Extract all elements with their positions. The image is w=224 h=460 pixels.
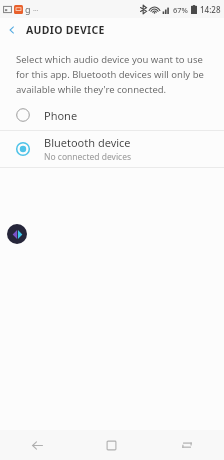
staticText: g — [25, 3, 31, 15]
button[interactable]: Assistant — [7, 224, 27, 244]
staticText: 67% — [173, 5, 188, 15]
staticText: No connected devices — [44, 151, 132, 163]
staticText: AUDIO DEVICE — [26, 23, 105, 37]
staticText: Bluetooth device — [44, 135, 131, 150]
staticText: 14:28 — [200, 4, 221, 15]
staticText: Select which audio device you want to us… — [16, 53, 208, 96]
button[interactable]: Phone — [0, 100, 224, 130]
staticText: … — [33, 4, 39, 14]
button[interactable]: Home — [74, 430, 149, 460]
button[interactable]: Bluetooth device — [0, 131, 224, 167]
staticText: Phone — [44, 108, 78, 123]
button[interactable]: Recents — [149, 430, 224, 460]
button[interactable]: Back — [0, 18, 23, 41]
button[interactable]: Back — [0, 430, 74, 460]
